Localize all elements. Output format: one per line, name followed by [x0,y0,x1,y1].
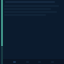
button[interactable]: Home [13,61,16,63]
